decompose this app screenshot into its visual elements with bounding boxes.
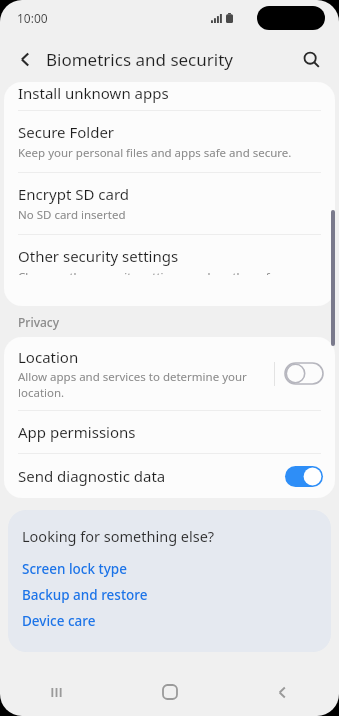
staticText: Screen lock type bbox=[22, 560, 127, 578]
button[interactable]: Back bbox=[8, 42, 42, 76]
button[interactable]: Recents bbox=[0, 668, 113, 716]
button[interactable]: Screen lock type bbox=[22, 556, 317, 582]
button[interactable]: Home bbox=[113, 668, 226, 716]
button[interactable]: Search bbox=[293, 41, 329, 77]
staticText: Privacy bbox=[18, 314, 60, 330]
button[interactable]: Location bbox=[4, 337, 335, 410]
staticText: Secure Folder bbox=[18, 122, 115, 142]
button[interactable]: Secure Folder bbox=[4, 111, 335, 172]
button[interactable]: Back bbox=[226, 668, 339, 716]
staticText: No SD card inserted bbox=[18, 207, 126, 223]
staticText: Device care bbox=[22, 612, 96, 630]
staticText: Change other security settings, such as … bbox=[18, 269, 309, 275]
button[interactable]: Other security settings bbox=[4, 235, 335, 286]
staticText: Other security settings bbox=[18, 246, 179, 266]
button[interactable]: Device care bbox=[22, 608, 317, 634]
staticText: Location bbox=[18, 347, 79, 367]
button[interactable]: App permissions bbox=[4, 411, 335, 453]
button[interactable]: Backup and restore bbox=[22, 582, 317, 608]
button[interactable]: Toggle off bbox=[285, 363, 323, 384]
button[interactable]: Send diagnostic data bbox=[4, 454, 335, 498]
staticText: Install unknown apps bbox=[18, 83, 169, 103]
staticText: 10:00 bbox=[17, 10, 48, 26]
staticText: App permissions bbox=[18, 422, 136, 442]
button[interactable]: Encrypt SD card bbox=[4, 173, 335, 234]
staticText: Keep your personal files and apps safe a… bbox=[18, 145, 292, 161]
staticText: Looking for something else? bbox=[22, 526, 215, 546]
button[interactable]: Install unknown apps bbox=[4, 82, 335, 110]
staticText: Backup and restore bbox=[22, 586, 148, 604]
staticText: Allow apps and services to determine you… bbox=[18, 369, 262, 400]
staticText: Send diagnostic data bbox=[18, 466, 166, 486]
staticText: Encrypt SD card bbox=[18, 184, 130, 204]
button[interactable]: Toggle on bbox=[285, 466, 323, 487]
staticText: Biometrics and security bbox=[46, 48, 233, 71]
